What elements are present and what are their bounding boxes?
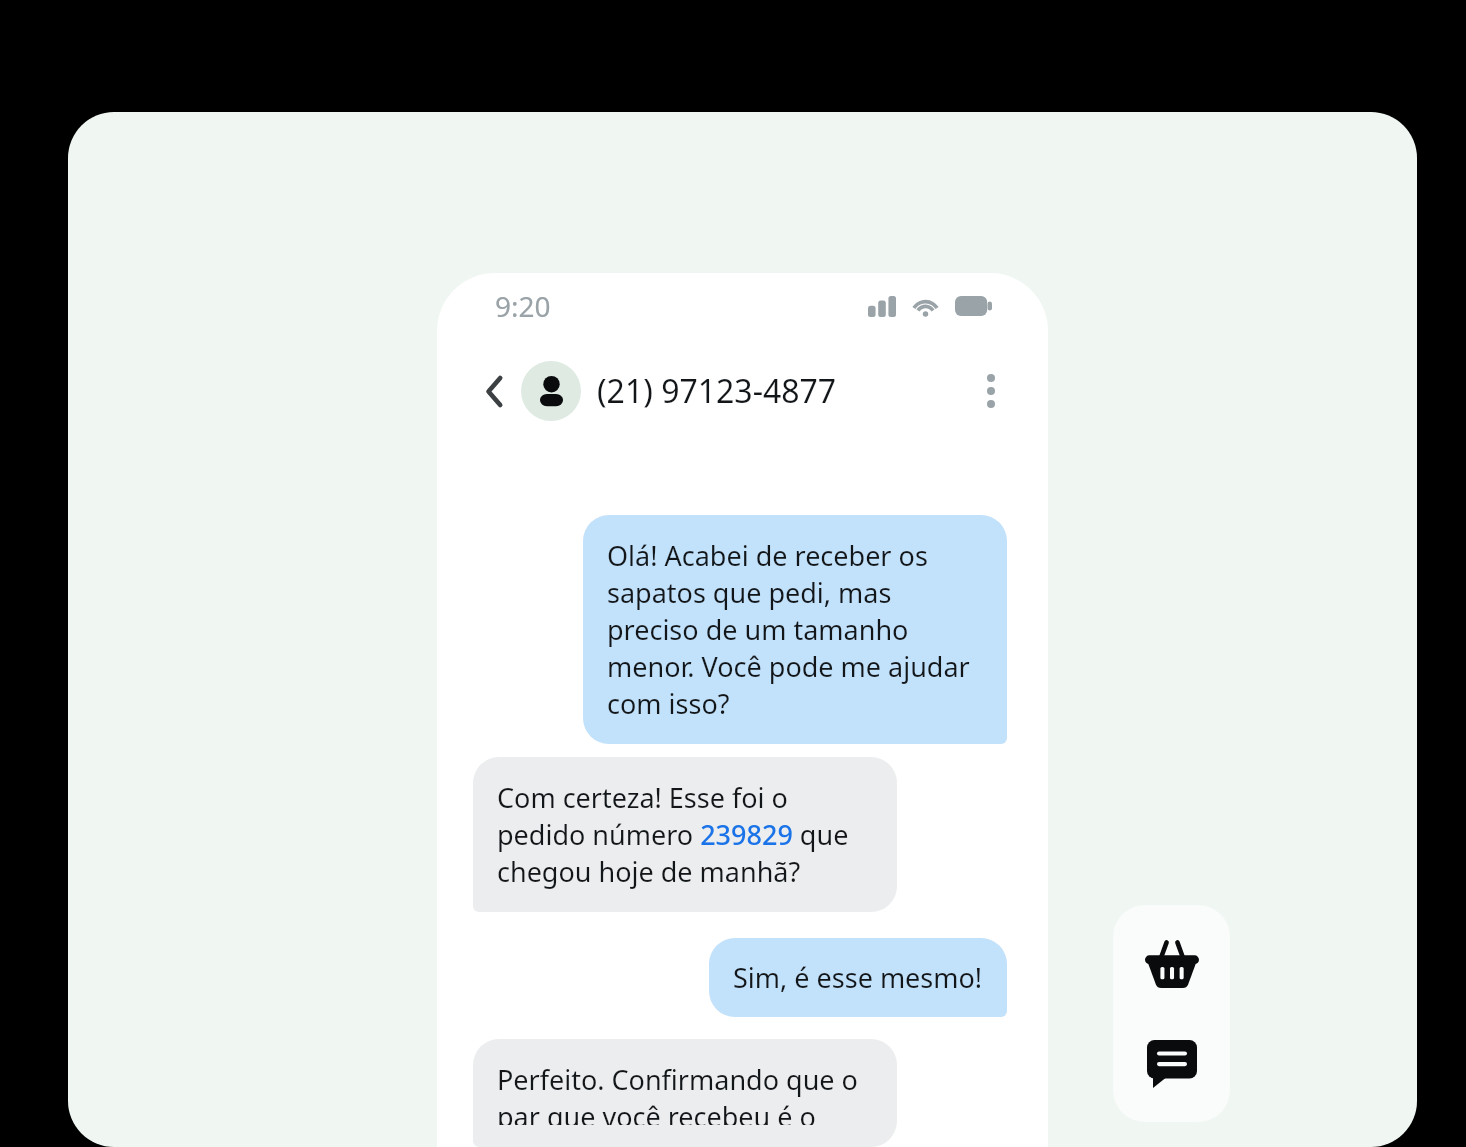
staticText: Perfeito. Confirmando que o par que você… [497,1061,873,1125]
button[interactable]: Sim, é esse mesmo! [709,938,1007,1017]
button[interactable]: Olá! Acabei de receber os sapatos que pe… [583,515,1007,744]
button[interactable]: Com certeza! Esse foi o pedido número 23… [473,757,897,912]
button[interactable]: Messages [1133,1025,1211,1103]
button[interactable]: Back [471,368,517,414]
button[interactable]: More options [968,368,1014,414]
staticText: Olá! Acabei de receber os sapatos que pe… [607,537,983,722]
staticText: (21) 97123-4877 [597,369,837,413]
button[interactable]: Contact avatar [521,361,581,421]
staticText: Com certeza! Esse foi o pedido número 23… [497,779,873,890]
button[interactable]: Perfeito. Confirmando que o par que você… [473,1039,897,1147]
staticText: Sim, é esse mesmo! [733,959,983,996]
staticText: 9:20 [495,287,551,325]
button[interactable]: Shopping basket [1133,925,1211,1003]
